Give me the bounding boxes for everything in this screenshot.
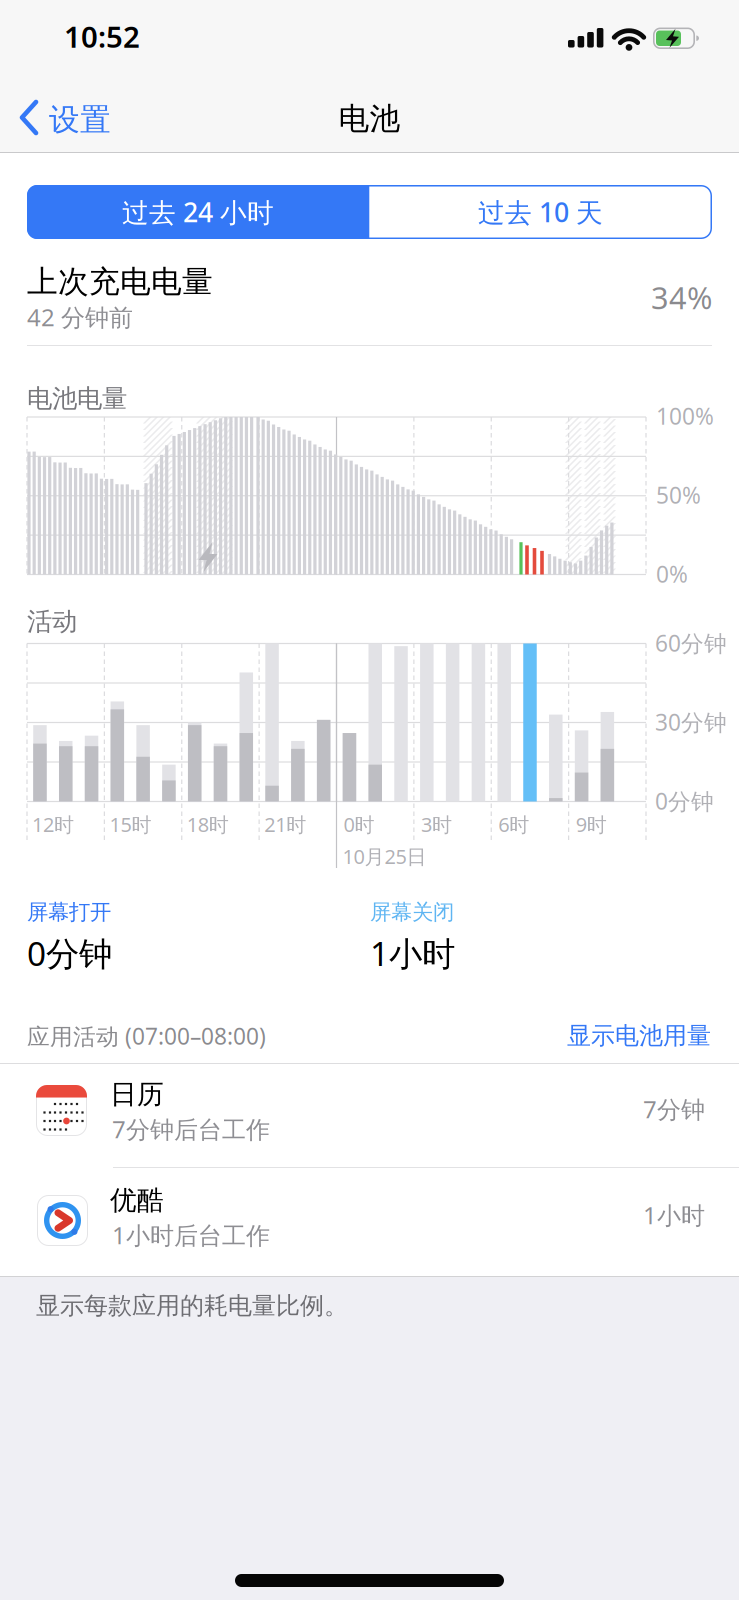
staticText: 应用活动 (07:00–08:00) xyxy=(27,1021,266,1051)
staticText: 电池 xyxy=(338,100,400,138)
button[interactable]: 日历 xyxy=(0,1064,739,1168)
staticText: 1小时后台工作 xyxy=(112,1219,270,1251)
staticText: 9时 xyxy=(576,811,607,838)
staticText: 1小时 xyxy=(370,931,455,975)
staticText: 30分钟 xyxy=(655,707,727,737)
staticText: 日历 xyxy=(110,1078,164,1111)
staticText: 10:52 xyxy=(64,17,140,56)
staticText: 电池电量 xyxy=(27,383,127,414)
staticText: 0% xyxy=(656,559,688,589)
staticText: 0分钟 xyxy=(655,786,714,816)
staticText: 15时 xyxy=(109,811,151,838)
staticText: 10月25日 xyxy=(342,843,426,870)
staticText: 60分钟 xyxy=(655,628,727,658)
button[interactable]: 过去 10 天 xyxy=(369,185,712,239)
staticText: 优酷 xyxy=(110,1184,164,1217)
staticText: 过去 24 小时 xyxy=(122,194,274,230)
staticText: 显示电池用量 xyxy=(567,1021,711,1050)
staticText: 12时 xyxy=(32,811,74,838)
staticText: 7分钟 xyxy=(643,1093,705,1125)
staticText: 上次充电电量 xyxy=(27,263,213,301)
staticText: 显示每款应用的耗电量比例。 xyxy=(36,1291,348,1320)
staticText: 屏幕关闭 xyxy=(370,899,454,925)
staticText: 100% xyxy=(656,401,714,431)
staticText: 34% xyxy=(651,277,712,318)
staticText: 0时 xyxy=(343,811,374,838)
button[interactable]: 设置 xyxy=(12,94,132,140)
button[interactable]: 过去 24 小时 xyxy=(27,185,369,239)
staticText: 6时 xyxy=(498,811,529,838)
staticText: 活动 xyxy=(27,606,77,637)
staticText: 7分钟后台工作 xyxy=(112,1113,270,1145)
staticText: 50% xyxy=(656,480,701,510)
staticText: 1小时 xyxy=(643,1199,705,1231)
button[interactable]: 显示电池用量 xyxy=(567,1021,711,1050)
staticText: 0分钟 xyxy=(27,931,112,975)
staticText: 过去 10 天 xyxy=(478,194,603,230)
staticText: 42 分钟前 xyxy=(27,301,133,333)
button[interactable]: 优酷 xyxy=(0,1170,739,1274)
staticText: 设置 xyxy=(49,101,111,139)
staticText: 3时 xyxy=(421,811,452,838)
staticText: 21时 xyxy=(264,811,306,838)
staticText: 18时 xyxy=(187,811,229,838)
staticText: 屏幕打开 xyxy=(27,899,111,925)
